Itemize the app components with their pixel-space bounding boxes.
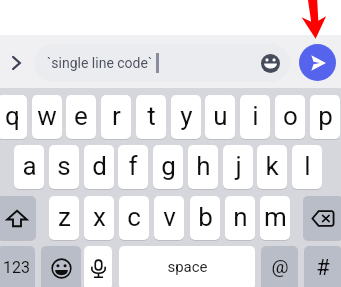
staticText: 123 <box>3 258 30 277</box>
button[interactable]: Backspace <box>303 196 341 240</box>
staticText: o <box>283 101 298 131</box>
button[interactable]: o <box>275 95 305 139</box>
staticText: f <box>128 151 138 181</box>
button[interactable]: w <box>32 95 62 139</box>
staticText: c <box>127 202 141 232</box>
staticText: k <box>265 151 279 181</box>
button[interactable]: 123 <box>0 246 35 287</box>
staticText: i <box>252 101 259 131</box>
staticText: @ <box>271 255 289 277</box>
staticText: g <box>161 151 176 181</box>
staticText: m <box>264 202 287 232</box>
staticText: y <box>180 101 193 131</box>
button[interactable]: f <box>118 145 148 189</box>
staticText: r <box>112 101 121 131</box>
button[interactable]: z <box>49 196 79 240</box>
staticText: p <box>318 101 333 131</box>
button[interactable]: # <box>304 246 341 287</box>
staticText: x <box>93 202 106 232</box>
staticText: u <box>213 101 228 131</box>
button[interactable]: p <box>310 95 340 139</box>
staticText: h <box>196 151 211 181</box>
button[interactable]: Emoji keyboard <box>41 246 81 287</box>
button[interactable]: u <box>205 95 235 139</box>
staticText: l <box>304 151 311 181</box>
staticText: z <box>58 202 71 232</box>
button[interactable]: q <box>0 95 27 139</box>
button[interactable]: Voice input <box>84 246 112 287</box>
staticText: e <box>74 101 88 131</box>
staticText: t <box>147 101 156 131</box>
button[interactable]: g <box>153 145 183 189</box>
button[interactable]: Emoji <box>258 51 282 75</box>
staticText: w <box>37 101 57 131</box>
button[interactable]: k <box>257 145 287 189</box>
staticText: j <box>235 151 242 181</box>
staticText: space <box>167 258 208 276</box>
button[interactable]: h <box>188 145 218 189</box>
button[interactable]: s <box>49 145 79 189</box>
button[interactable]: Shift <box>0 196 36 240</box>
button[interactable]: r <box>101 95 131 139</box>
button[interactable]: n <box>225 196 255 240</box>
button[interactable]: y <box>171 95 201 139</box>
staticText: q <box>5 101 20 131</box>
staticText: # <box>316 255 330 281</box>
button[interactable]: @ <box>261 246 298 287</box>
button[interactable]: a <box>14 145 44 189</box>
button[interactable]: e <box>66 95 96 139</box>
button[interactable]: v <box>154 196 184 240</box>
staticText: v <box>163 202 176 232</box>
button[interactable]: Send <box>299 44 336 81</box>
staticText: `single line code` <box>47 55 153 71</box>
button[interactable]: c <box>119 196 149 240</box>
button[interactable]: d <box>84 145 114 189</box>
button[interactable]: Expand toolbar <box>3 50 29 76</box>
button[interactable]: space <box>119 246 255 287</box>
button[interactable]: t <box>136 95 166 139</box>
button[interactable]: b <box>190 196 220 240</box>
staticText: a <box>22 151 37 181</box>
button[interactable]: l <box>292 145 322 189</box>
button[interactable]: x <box>84 196 114 240</box>
button[interactable]: m <box>260 196 290 240</box>
button[interactable]: j <box>223 145 253 189</box>
staticText: n <box>233 202 248 232</box>
button[interactable]: i <box>240 95 270 139</box>
staticText: b <box>198 202 213 232</box>
button[interactable]: `single line code` <box>34 44 290 82</box>
staticText: d <box>92 151 107 181</box>
staticText: s <box>57 151 71 181</box>
